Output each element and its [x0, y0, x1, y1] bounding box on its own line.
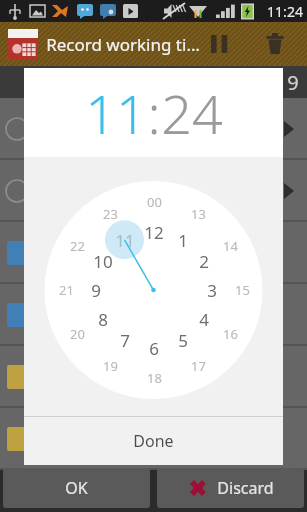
- button[interactable]: Done: [24, 417, 283, 465]
- button[interactable]: OK: [3, 468, 150, 508]
- button[interactable]: 16: [218, 325, 242, 343]
- button[interactable]: 15: [230, 281, 254, 299]
- button[interactable]: 14: [218, 237, 242, 255]
- staticText: Discard: [217, 477, 274, 499]
- staticText: 15: [235, 281, 250, 299]
- button[interactable]: [0, 160, 307, 222]
- staticText: Done: [133, 430, 174, 452]
- staticText: 11: [115, 229, 135, 252]
- button[interactable]: 00: [142, 193, 166, 211]
- button[interactable]: 13: [186, 205, 210, 223]
- button[interactable]: [0, 408, 307, 470]
- button[interactable]: 24: [161, 76, 223, 150]
- staticText: 18: [147, 369, 162, 387]
- button[interactable]: 21: [54, 281, 78, 299]
- staticText: 21: [59, 281, 74, 299]
- staticText: 6: [149, 337, 159, 360]
- staticText: 23: [103, 205, 118, 223]
- staticText: 4: [199, 308, 209, 331]
- button[interactable]: 19: [98, 357, 122, 375]
- staticText: 14: [223, 237, 238, 255]
- button[interactable]: 11: [85, 76, 147, 150]
- staticText: Record working ti…: [46, 33, 200, 56]
- button[interactable]: 20: [65, 325, 89, 343]
- staticText: 9: [287, 69, 299, 96]
- staticText: 24: [161, 76, 223, 150]
- button[interactable]: 4: [192, 307, 216, 331]
- button[interactable]: 2: [192, 249, 216, 273]
- staticText: 22: [70, 237, 85, 255]
- button[interactable]: 17: [186, 357, 210, 375]
- staticText: :: [147, 76, 161, 150]
- staticText: 11: [85, 76, 147, 150]
- button[interactable]: 23: [98, 205, 122, 223]
- button[interactable]: 3: [200, 278, 224, 302]
- staticText: 20: [70, 325, 85, 343]
- staticText: 9: [91, 279, 101, 302]
- staticText: 5: [178, 329, 188, 352]
- button[interactable]: Delete: [257, 26, 293, 62]
- staticText: 12: [144, 221, 164, 244]
- button[interactable]: [0, 98, 307, 160]
- button[interactable]: 10: [91, 249, 115, 273]
- button[interactable]: 5: [171, 328, 195, 352]
- button[interactable]: [0, 222, 307, 284]
- button[interactable]: Discard: [157, 468, 304, 508]
- button[interactable]: 12: [142, 220, 166, 244]
- button[interactable]: 8: [91, 307, 115, 331]
- staticText: 19: [103, 357, 118, 375]
- button[interactable]: 9: [84, 278, 108, 302]
- staticText: 11:24: [267, 2, 303, 21]
- button[interactable]: 22: [65, 237, 89, 255]
- staticText: 8: [98, 308, 108, 331]
- staticText: 13: [191, 205, 206, 223]
- button[interactable]: 6: [142, 336, 166, 360]
- button[interactable]: 18: [142, 369, 166, 387]
- button[interactable]: 1: [171, 228, 195, 252]
- button[interactable]: 7: [113, 328, 137, 352]
- staticText: OK: [65, 477, 88, 499]
- button[interactable]: 11: [113, 228, 137, 252]
- button[interactable]: Pause: [201, 26, 237, 62]
- staticText: 1: [178, 229, 188, 252]
- staticText: 2: [199, 250, 209, 273]
- staticText: 17: [191, 357, 206, 375]
- staticText: 3: [207, 279, 217, 302]
- staticText: 16: [223, 325, 238, 343]
- button[interactable]: [0, 346, 307, 408]
- staticText: 10: [93, 250, 113, 273]
- button[interactable]: [0, 284, 307, 346]
- staticText: 7: [120, 329, 130, 352]
- staticText: 00: [147, 193, 162, 211]
